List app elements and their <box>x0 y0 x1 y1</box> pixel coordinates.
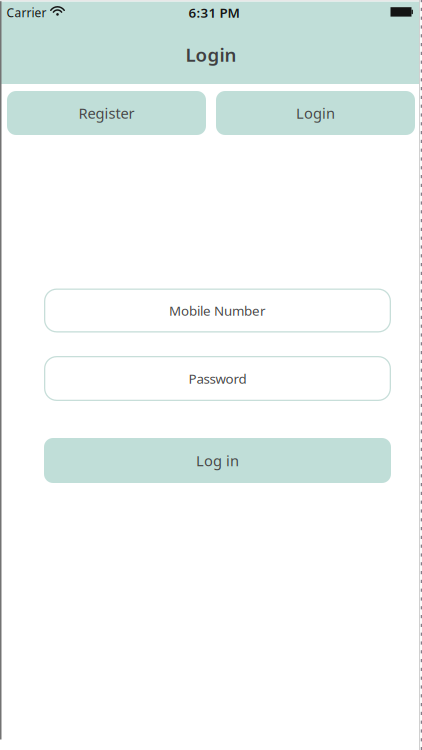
staticText: Register <box>78 103 134 123</box>
button[interactable]: Mobile Number <box>44 288 391 332</box>
button[interactable]: Password <box>44 356 391 401</box>
button[interactable]: Log in <box>44 438 391 483</box>
staticText: Mobile Number <box>169 302 266 319</box>
staticText: Login <box>296 103 335 123</box>
button[interactable]: Register <box>7 91 206 135</box>
staticText: Carrier <box>6 4 46 20</box>
staticText: Log in <box>196 451 239 470</box>
button[interactable]: Login <box>216 91 415 135</box>
staticText: Password <box>188 370 246 387</box>
staticText: 6:31 PM <box>188 4 239 21</box>
staticText: Login <box>185 42 236 67</box>
